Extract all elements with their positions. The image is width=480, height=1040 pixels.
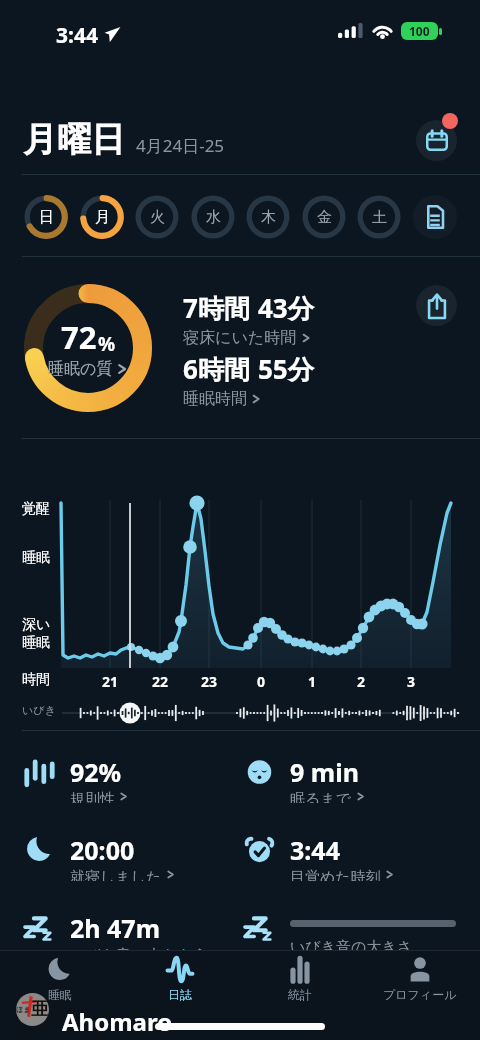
- button[interactable]: 9 min: [242, 755, 457, 803]
- staticText: 6時間: [183, 351, 250, 387]
- button[interactable]: 日: [23, 194, 69, 240]
- button[interactable]: 木: [245, 194, 291, 240]
- staticText: 1: [308, 672, 317, 691]
- staticText: 日誌: [168, 987, 192, 1002]
- button[interactable]: [62, 700, 460, 726]
- staticText: 20:00: [70, 833, 135, 867]
- staticText: 7時間: [183, 290, 250, 326]
- staticText: 目覚めた時刻: [290, 868, 381, 881]
- staticText: 睡眠の質: [48, 359, 113, 379]
- button[interactable]: プロフィール: [372, 951, 468, 1003]
- staticText: 眠るまで: [290, 790, 352, 803]
- staticText: いびき: [22, 703, 56, 717]
- staticText: 3:44: [290, 833, 340, 867]
- staticText: 0: [257, 672, 266, 691]
- staticText: 覚醒: [22, 500, 50, 518]
- button[interactable]: 統計: [252, 951, 348, 1003]
- staticText: 睡眠: [22, 634, 50, 652]
- button[interactable]: いびき音の大きさ: [242, 911, 457, 959]
- staticText: 43分: [258, 290, 314, 326]
- staticText: 月曜日: [23, 118, 125, 161]
- staticText: いびき音の大きさ: [70, 946, 193, 959]
- staticText: 3: [407, 672, 416, 691]
- staticText: 土: [372, 208, 387, 227]
- button[interactable]: 水: [190, 194, 236, 240]
- staticText: 2: [357, 672, 366, 691]
- staticText: 4月24日-25: [136, 134, 225, 157]
- staticText: 22: [152, 672, 169, 691]
- staticText: 72: [61, 316, 97, 358]
- button[interactable]: 月: [79, 194, 125, 240]
- staticText: プロフィール: [383, 987, 457, 1002]
- button[interactable]: 火: [134, 194, 180, 240]
- button[interactable]: Share: [416, 285, 457, 326]
- staticText: 3:44: [56, 21, 98, 50]
- button[interactable]: 金: [301, 194, 347, 240]
- staticText: 睡眠: [22, 549, 50, 567]
- staticText: 規則性: [70, 790, 115, 803]
- staticText: 9 min: [290, 755, 359, 789]
- button[interactable]: 睡眠: [12, 951, 108, 1003]
- staticText: 水: [206, 208, 221, 227]
- staticText: Ahomaro: [62, 1005, 173, 1038]
- staticText: 寝床にいた時間: [183, 328, 297, 348]
- button[interactable]: Sleep notes: [413, 195, 457, 239]
- button[interactable]: 2h 47m: [22, 911, 237, 959]
- staticText: 92%: [70, 755, 122, 789]
- button[interactable]: 92%: [22, 755, 237, 803]
- staticText: 睡眠時間: [183, 389, 247, 409]
- staticText: いびき音の大きさ: [290, 938, 413, 957]
- staticText: 100: [409, 23, 430, 39]
- button[interactable]: 日誌: [132, 951, 228, 1003]
- staticText: 金: [317, 208, 332, 227]
- button[interactable]: Calendar: [416, 120, 457, 161]
- button[interactable]: 20:00: [22, 833, 237, 881]
- staticText: 時間: [22, 671, 50, 689]
- button[interactable]: 土: [356, 194, 402, 240]
- staticText: %: [98, 331, 116, 357]
- staticText: 21: [102, 672, 119, 691]
- staticText: 月: [95, 208, 110, 227]
- staticText: 亜: [31, 998, 49, 1021]
- staticText: 深い: [22, 616, 51, 634]
- staticText: 23: [201, 672, 218, 691]
- staticText: 55分: [258, 351, 314, 387]
- staticText: 就寝しました: [70, 868, 162, 881]
- staticText: 統計: [288, 987, 312, 1002]
- staticText: 火: [150, 208, 165, 227]
- staticText: 木: [261, 208, 276, 227]
- staticText: 2h 47m: [70, 911, 161, 945]
- staticText: 日: [39, 208, 54, 227]
- staticText: 睡眠: [48, 987, 72, 1002]
- button[interactable]: 3:44: [242, 833, 457, 881]
- staticText: ほま: [16, 1005, 31, 1014]
